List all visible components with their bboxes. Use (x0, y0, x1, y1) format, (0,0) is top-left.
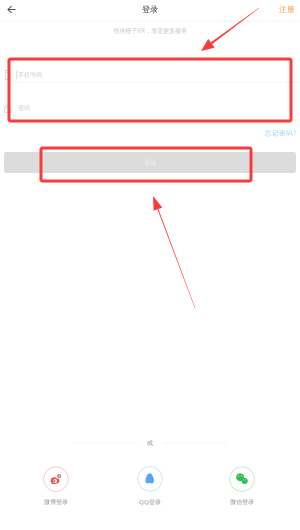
button[interactable]: 注册 (263, 0, 295, 20)
button[interactable]: 微博登录 (24, 465, 88, 507)
staticText: 微博登录 (44, 498, 68, 506)
staticText: 登录橙子VR，享受更多服务 (113, 26, 187, 35)
staticText: 微信登录 (230, 498, 254, 506)
staticText: 密码 (18, 104, 30, 112)
staticText: 或 (147, 439, 153, 447)
staticText: QQ登录 (139, 498, 161, 506)
staticText: 忘记密码? (265, 128, 296, 138)
staticText: 登录 (142, 4, 158, 15)
button[interactable]: 微信登录 (210, 465, 274, 507)
staticText: 登录 (144, 158, 156, 167)
staticText: 手机号码 (18, 71, 42, 79)
button[interactable]: 登录 (4, 152, 296, 173)
button[interactable]: Back (0, 0, 24, 20)
button[interactable]: 忘记密码? (252, 126, 296, 140)
staticText: 注册 (279, 5, 295, 14)
button[interactable]: QQ登录 (118, 465, 182, 507)
